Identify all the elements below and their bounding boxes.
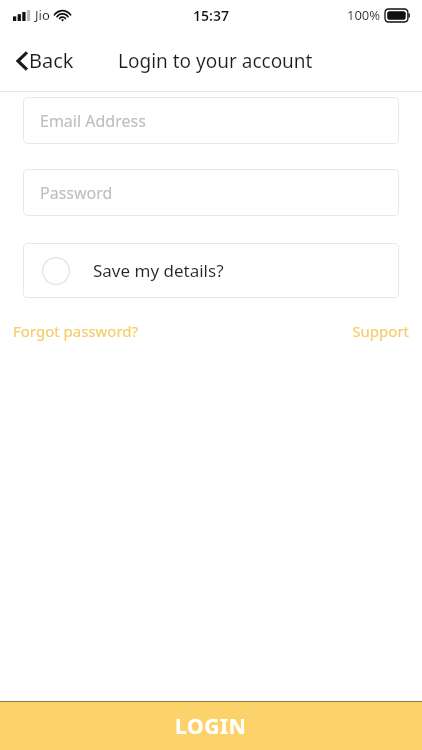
- staticText: Support: [352, 321, 409, 341]
- button[interactable]: LOGIN: [0, 702, 422, 750]
- staticText: Jio: [35, 6, 50, 24]
- staticText: LOGIN: [175, 712, 247, 741]
- staticText: Forgot password?: [13, 321, 139, 341]
- staticText: Email Address: [40, 110, 146, 132]
- button[interactable]: Forgot password?: [8, 318, 144, 344]
- staticText: Back: [29, 47, 74, 74]
- button[interactable]: Save my details?: [23, 243, 399, 298]
- staticText: 100%: [347, 6, 381, 24]
- button[interactable]: Back: [14, 41, 76, 80]
- button[interactable]: Password: [23, 169, 399, 216]
- button[interactable]: Email Address: [23, 97, 399, 144]
- staticText: Save my details?: [93, 259, 224, 282]
- button[interactable]: Support: [347, 318, 414, 344]
- staticText: 15:37: [193, 6, 229, 25]
- staticText: Password: [40, 182, 113, 204]
- staticText: Login to your account: [118, 48, 313, 74]
